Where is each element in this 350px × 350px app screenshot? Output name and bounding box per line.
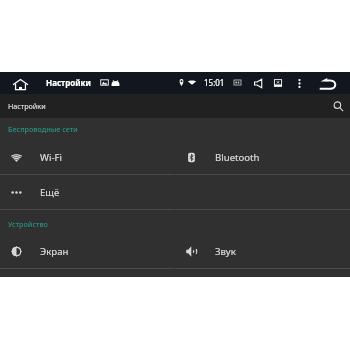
- button[interactable]: Search: [328, 96, 348, 116]
- button[interactable]: Back: [312, 72, 344, 94]
- staticText: Wi-Fi: [40, 151, 62, 164]
- staticText: Устройство: [8, 219, 48, 229]
- button[interactable]: Wi-Fi: [0, 140, 175, 174]
- button[interactable]: Ещё: [0, 175, 175, 209]
- staticText: 15:01: [204, 77, 225, 88]
- staticText: Экран: [40, 245, 69, 258]
- staticText: Звук: [215, 245, 236, 258]
- button[interactable]: Bluetooth: [175, 140, 350, 174]
- staticText: Bluetooth: [215, 151, 260, 164]
- staticText: Настройки: [8, 101, 46, 111]
- button[interactable]: Экран: [0, 234, 175, 268]
- staticText: Ещё: [40, 186, 60, 199]
- button[interactable]: Home: [7, 72, 33, 94]
- button[interactable]: More options: [292, 73, 306, 93]
- button[interactable]: Звук: [175, 234, 350, 268]
- staticText: Настройки: [46, 77, 91, 88]
- staticText: Беспроводные сети: [8, 124, 78, 134]
